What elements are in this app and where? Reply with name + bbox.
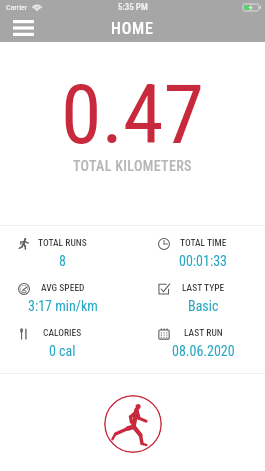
other: Battery xyxy=(243,4,261,11)
staticText: TOTAL RUNS xyxy=(38,237,87,248)
button[interactable]: CALORIES xyxy=(0,316,139,361)
button[interactable]: Start run xyxy=(104,395,162,453)
other: Wi-Fi xyxy=(32,3,42,11)
staticText: CALORIES xyxy=(43,327,82,338)
button[interactable]: Menu xyxy=(0,14,47,42)
staticText: AVG SPEED xyxy=(41,282,85,293)
staticText: 5:35 PM xyxy=(118,2,148,13)
button[interactable]: LAST TYPE xyxy=(139,271,265,316)
button[interactable]: TOTAL TIME xyxy=(139,226,265,271)
staticText: 3:17 min/km xyxy=(28,298,98,314)
staticText: 08.06.2020 xyxy=(172,343,235,359)
staticText: LAST TYPE xyxy=(182,282,225,293)
button[interactable]: AVG SPEED xyxy=(0,271,139,316)
staticText: 00:01:33 xyxy=(179,253,228,269)
button[interactable]: TOTAL RUNS xyxy=(0,226,139,271)
staticText: TOTAL TIME xyxy=(180,237,227,248)
staticText: HOME xyxy=(111,19,154,38)
staticText: 0 cal xyxy=(49,343,76,359)
staticText: Carrier xyxy=(6,3,28,12)
staticText: LAST RUN xyxy=(184,327,223,338)
staticText: Basic xyxy=(188,298,219,314)
staticText: 8 xyxy=(59,253,66,269)
staticText: TOTAL KILOMETERS xyxy=(73,158,192,174)
button[interactable]: LAST RUN xyxy=(139,316,265,361)
staticText: 0.47 xyxy=(61,67,205,163)
